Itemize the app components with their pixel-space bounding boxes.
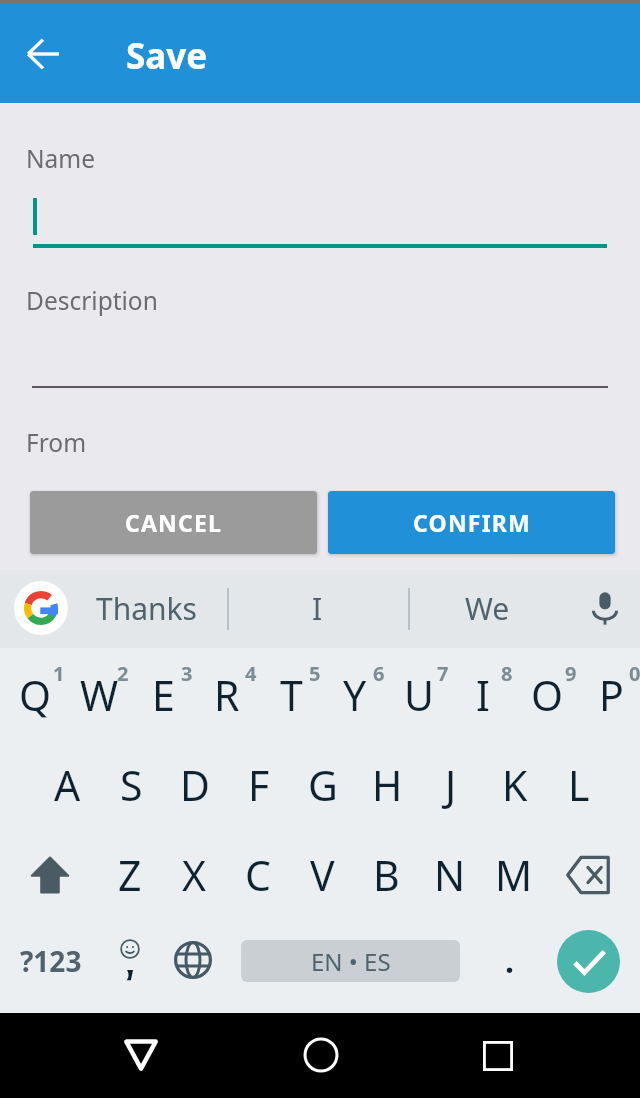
- button[interactable]: H: [355, 745, 419, 825]
- staticText: CANCEL: [125, 507, 223, 538]
- button[interactable]: O: [512, 655, 576, 735]
- button[interactable]: I: [244, 570, 390, 646]
- staticText: J: [445, 757, 457, 813]
- button[interactable]: Y: [320, 655, 384, 735]
- button[interactable]: P: [576, 655, 640, 735]
- staticText: X: [182, 847, 207, 903]
- button[interactable]: CONFIRM: [328, 491, 615, 554]
- staticText: 8: [501, 660, 513, 687]
- staticText: T: [280, 667, 303, 723]
- button[interactable]: V: [290, 835, 354, 915]
- staticText: 0: [629, 660, 640, 687]
- button[interactable]: Thanks: [73, 570, 219, 646]
- staticText: 2: [117, 660, 129, 687]
- button[interactable]: Recents: [483, 1041, 513, 1071]
- staticText: Save: [126, 32, 208, 80]
- staticText: G: [308, 757, 338, 813]
- staticText: 9: [565, 660, 577, 687]
- staticText: U: [404, 667, 434, 723]
- button[interactable]: Change language: [174, 941, 212, 979]
- staticText: 1: [53, 660, 65, 687]
- button[interactable]: C: [226, 835, 290, 915]
- button[interactable]: Shift: [18, 835, 82, 915]
- button[interactable]: G: [291, 745, 355, 825]
- staticText: H: [372, 757, 403, 813]
- button[interactable]: Enter: [557, 930, 620, 993]
- staticText: D: [180, 757, 210, 813]
- button[interactable]: We: [414, 570, 560, 646]
- staticText: I: [312, 588, 323, 629]
- staticText: P: [599, 667, 624, 723]
- staticText: V: [310, 847, 335, 903]
- staticText: Description: [26, 284, 158, 317]
- button[interactable]: I: [448, 655, 512, 735]
- staticText: ?123: [20, 942, 82, 980]
- button[interactable]: Back: [14, 25, 72, 83]
- staticText: Z: [118, 847, 142, 903]
- staticText: Thanks: [96, 588, 197, 629]
- button[interactable]: N: [418, 835, 482, 915]
- button[interactable]: Z: [98, 835, 162, 915]
- button[interactable]: Emoji: [98, 921, 162, 1001]
- staticText: E: [152, 667, 175, 723]
- staticText: Q: [19, 667, 52, 723]
- staticText: L: [568, 757, 590, 813]
- button[interactable]: L: [547, 745, 611, 825]
- staticText: 7: [437, 660, 449, 687]
- button[interactable]: W: [64, 655, 128, 735]
- staticText: K: [502, 757, 528, 813]
- button[interactable]: X: [162, 835, 226, 915]
- button[interactable]: Description field: [24, 278, 616, 388]
- button[interactable]: Voice input: [572, 570, 638, 646]
- staticText: 3: [181, 660, 193, 687]
- button[interactable]: CANCEL: [30, 491, 317, 554]
- staticText: W: [80, 667, 119, 723]
- button[interactable]: Name field: [24, 136, 616, 252]
- staticText: S: [120, 757, 143, 813]
- button[interactable]: D: [163, 745, 227, 825]
- button[interactable]: R: [192, 655, 256, 735]
- staticText: .: [505, 939, 514, 983]
- button[interactable]: F: [227, 745, 291, 825]
- button[interactable]: J: [419, 745, 483, 825]
- button[interactable]: Period: [478, 921, 540, 1001]
- staticText: CONFIRM: [413, 507, 531, 538]
- staticText: We: [465, 588, 510, 629]
- staticText: Y: [343, 667, 367, 723]
- staticText: R: [214, 667, 240, 723]
- button[interactable]: U: [384, 655, 448, 735]
- button[interactable]: B: [354, 835, 418, 915]
- staticText: I: [476, 667, 490, 723]
- button[interactable]: Backspace: [556, 835, 620, 915]
- staticText: 6: [373, 660, 385, 687]
- button[interactable]: EN • ES: [241, 940, 460, 982]
- button[interactable]: K: [483, 745, 547, 825]
- button[interactable]: Back: [124, 1039, 160, 1075]
- staticText: B: [373, 847, 400, 903]
- staticText: From: [26, 426, 87, 459]
- button[interactable]: ?123: [10, 921, 92, 1001]
- staticText: N: [434, 847, 466, 903]
- button[interactable]: S: [99, 745, 163, 825]
- staticText: A: [54, 757, 81, 813]
- button[interactable]: Home: [304, 1038, 338, 1072]
- staticText: C: [245, 847, 271, 903]
- staticText: O: [531, 667, 564, 723]
- button[interactable]: T: [256, 655, 320, 735]
- staticText: M: [495, 847, 533, 903]
- button[interactable]: M: [482, 835, 546, 915]
- staticText: EN • ES: [311, 945, 391, 978]
- staticText: 5: [309, 660, 321, 687]
- staticText: Name: [26, 142, 96, 175]
- button[interactable]: A: [35, 745, 99, 825]
- button[interactable]: Google Assistant: [14, 581, 68, 635]
- staticText: 4: [245, 660, 257, 687]
- staticText: F: [248, 757, 270, 813]
- button[interactable]: E: [128, 655, 192, 735]
- button[interactable]: Q: [0, 655, 64, 735]
